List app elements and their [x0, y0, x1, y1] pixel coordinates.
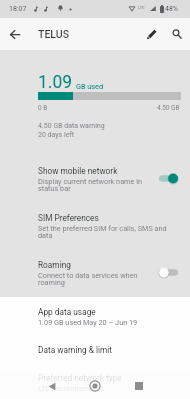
- staticText: 1.09 GB used May 20 – Jun 19: [38, 318, 138, 327]
- button[interactable]: Recent apps: [128, 375, 150, 397]
- staticText: 4.50 GB: [157, 104, 180, 112]
- staticText: Set the preferred SIM for calls, SMS and…: [38, 224, 167, 240]
- staticText: Connect to data services when roaming: [38, 271, 138, 287]
- staticText: App data usage: [38, 307, 96, 317]
- button[interactable]: SIM Preferences: [0, 205, 190, 252]
- button[interactable]: App data usage: [0, 299, 190, 337]
- staticText: Preferred network type: [38, 373, 122, 383]
- staticText: TELUS: [38, 28, 70, 40]
- button[interactable]: Edit: [139, 22, 163, 46]
- staticText: LTE: [138, 5, 145, 10]
- staticText: SIM Preferences: [38, 213, 99, 223]
- button[interactable]: Back: [41, 375, 63, 397]
- button[interactable]: Navigate up: [3, 23, 26, 46]
- button[interactable]: Roaming: [0, 252, 190, 299]
- staticText: 48%: [165, 5, 178, 13]
- staticText: Roaming: [38, 260, 71, 270]
- button[interactable]: Search: [165, 22, 189, 46]
- button[interactable]: Show mobile network: [0, 158, 190, 205]
- button[interactable]: Home: [84, 375, 106, 397]
- staticText: Data warning & limit: [38, 345, 112, 355]
- button[interactable]: Preferred network type: [0, 365, 190, 399]
- staticText: 1.09: [38, 72, 73, 93]
- button[interactable]: Data warning & limit: [0, 337, 190, 365]
- staticText: Display current network name in status b…: [38, 177, 142, 193]
- staticText: 4.50 GB data warning 20 days left: [38, 122, 105, 139]
- staticText: 18:07: [9, 5, 27, 13]
- staticText: 0 B: [38, 104, 48, 112]
- staticText: Show mobile network: [38, 166, 118, 176]
- staticText: GB used: [76, 82, 104, 91]
- staticText: LTE (recommended): [38, 384, 104, 393]
